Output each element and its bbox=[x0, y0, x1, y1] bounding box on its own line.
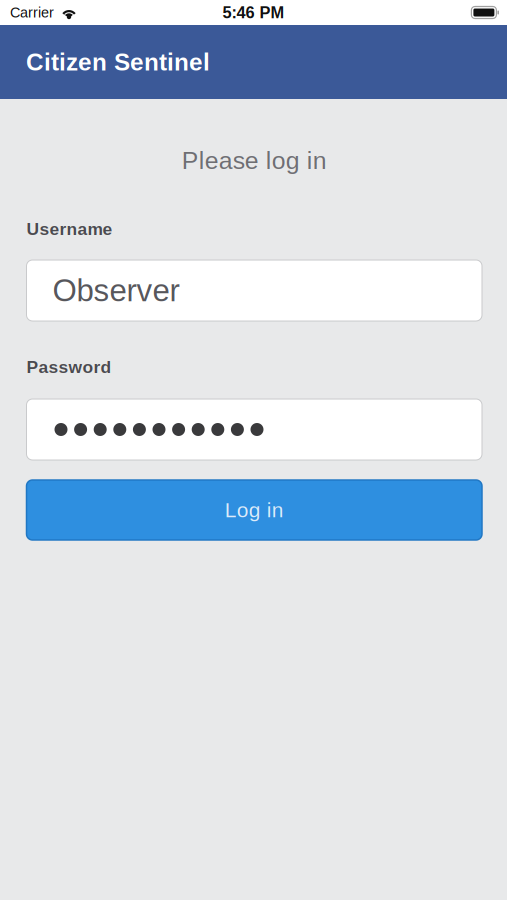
button[interactable]: Log in bbox=[26, 480, 482, 540]
staticText: Log in bbox=[225, 498, 284, 522]
staticText: Password bbox=[26, 357, 111, 377]
staticText: 5:46 PM bbox=[222, 3, 284, 22]
staticText: Citizen Sentinel bbox=[26, 48, 210, 75]
button[interactable]: Observer bbox=[26, 260, 482, 321]
staticText: Carrier bbox=[10, 4, 54, 21]
staticText: Username bbox=[26, 219, 112, 239]
staticText: Please log in bbox=[182, 147, 327, 174]
staticText: Observer bbox=[52, 273, 179, 308]
button[interactable] bbox=[26, 399, 482, 460]
